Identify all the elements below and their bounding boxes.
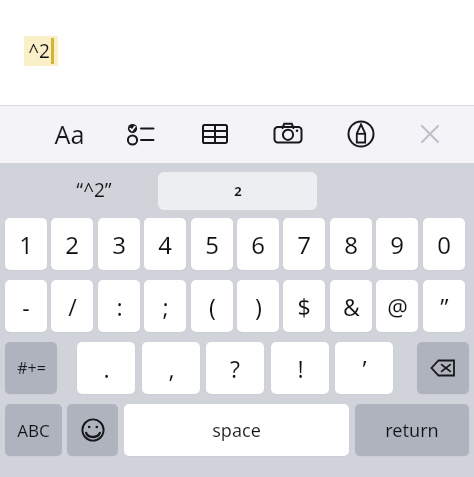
button[interactable]: ! — [271, 342, 329, 394]
staticText: / — [68, 291, 77, 322]
staticText: space — [212, 418, 261, 443]
staticText: ! — [297, 353, 304, 384]
button[interactable]: $ — [283, 280, 325, 332]
staticText: ’ — [362, 353, 367, 384]
button[interactable]: 5 — [191, 218, 233, 270]
button[interactable]: Markup — [337, 110, 385, 158]
staticText: ABC — [17, 419, 50, 442]
staticText: 8 — [344, 228, 358, 261]
button[interactable]: ( — [191, 280, 233, 332]
staticText: ) — [255, 291, 262, 322]
button[interactable]: ; — [144, 280, 186, 332]
button[interactable]: 1 — [5, 218, 47, 270]
button[interactable]: “^2” — [48, 168, 140, 212]
button[interactable]: @ — [376, 280, 418, 332]
button[interactable]: ) — [237, 280, 279, 332]
button[interactable]: Text format — [45, 110, 93, 158]
staticText: 1 — [19, 228, 33, 261]
button[interactable]: Camera — [264, 110, 312, 158]
button[interactable]: . — [77, 342, 135, 394]
staticText: ? — [230, 353, 240, 384]
staticText: @ — [387, 291, 408, 322]
button[interactable]: 6 — [237, 218, 279, 270]
staticText: ; — [162, 291, 169, 322]
staticText: 0 — [437, 228, 451, 261]
button[interactable]: Close keyboard — [406, 110, 454, 158]
staticText: : — [116, 291, 123, 322]
button[interactable]: ’ — [335, 342, 393, 394]
staticText: Aa — [54, 117, 85, 151]
button[interactable]: & — [330, 280, 372, 332]
staticText: 2 — [234, 182, 242, 200]
staticText: 3 — [112, 228, 126, 261]
staticText: ” — [440, 291, 449, 322]
button[interactable]: - — [5, 280, 47, 332]
button[interactable]: Checklist — [119, 110, 167, 158]
button[interactable]: 9 — [376, 218, 418, 270]
button[interactable]: : — [98, 280, 140, 332]
button[interactable]: 2 — [51, 218, 93, 270]
staticText: ^2 — [28, 38, 50, 64]
button[interactable]: / — [51, 280, 93, 332]
staticText: 7 — [297, 228, 311, 261]
staticText: , — [168, 353, 175, 384]
button[interactable]: 3 — [98, 218, 140, 270]
button[interactable]: Emoji — [67, 404, 118, 456]
button[interactable]: Backspace — [417, 342, 469, 394]
staticText: 9 — [390, 228, 404, 261]
button[interactable]: 0 — [423, 218, 465, 270]
button[interactable]: ABC — [5, 404, 62, 456]
staticText: 5 — [205, 228, 219, 261]
staticText: #+= — [17, 357, 46, 379]
button[interactable]: 7 — [283, 218, 325, 270]
staticText: ( — [209, 291, 216, 322]
button[interactable]: , — [142, 342, 200, 394]
staticText: . — [103, 353, 110, 384]
staticText: 6 — [251, 228, 265, 261]
staticText: 2 — [65, 228, 79, 261]
button[interactable]: 8 — [330, 218, 372, 270]
staticText: - — [22, 291, 30, 322]
button[interactable]: return — [355, 404, 469, 456]
button[interactable]: 2 — [158, 172, 317, 210]
button[interactable]: ” — [423, 280, 465, 332]
button[interactable]: Table — [191, 110, 239, 158]
staticText: & — [343, 291, 360, 322]
button[interactable]: ? — [206, 342, 264, 394]
staticText: “^2” — [76, 177, 112, 203]
staticText: 4 — [158, 228, 172, 261]
button[interactable]: 4 — [144, 218, 186, 270]
button[interactable]: #+= — [5, 342, 57, 394]
staticText: $ — [297, 291, 311, 322]
button[interactable]: space — [124, 404, 349, 456]
staticText: return — [385, 418, 439, 443]
